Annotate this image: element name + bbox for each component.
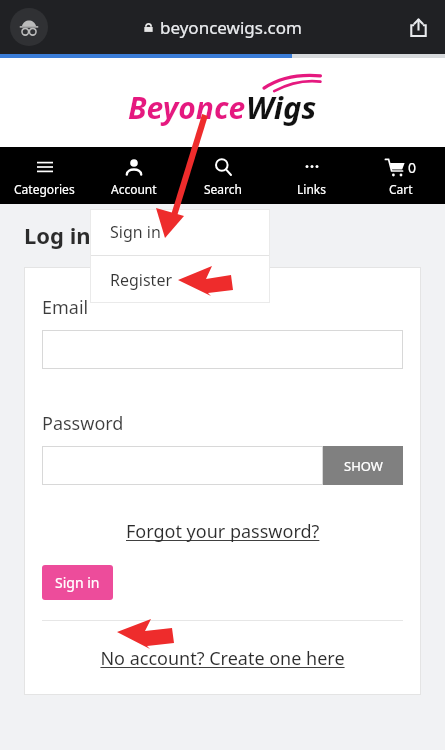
staticText: Register	[110, 269, 173, 291]
staticText: Sign in	[110, 221, 161, 243]
staticText: Password	[42, 411, 124, 436]
button[interactable]: No account? Create one here	[100, 646, 345, 671]
button[interactable]: Search	[178, 150, 267, 202]
staticText: SHOW	[344, 457, 383, 475]
staticText: Account	[111, 181, 157, 197]
button[interactable]: 0	[356, 150, 445, 202]
staticText: Categories	[14, 181, 75, 197]
staticText: Log in	[24, 220, 91, 250]
button[interactable]	[42, 330, 403, 369]
button[interactable]: Forgot your password?	[126, 519, 320, 544]
staticText: Sign in	[55, 573, 100, 592]
staticText: Email	[42, 295, 89, 320]
staticText: Beyonce	[128, 87, 246, 128]
button[interactable]: Categories	[0, 150, 89, 202]
button[interactable]	[42, 446, 323, 485]
staticText: Cart	[389, 181, 413, 197]
button[interactable]: Links	[267, 150, 356, 202]
button[interactable]: Share	[401, 10, 435, 44]
button[interactable]: Account	[89, 150, 178, 202]
staticText: 0	[408, 158, 417, 177]
button[interactable]: Incognito	[10, 8, 48, 46]
staticText: beyoncewigs.com	[160, 16, 302, 39]
button[interactable]: Register	[90, 256, 270, 303]
staticText: Links	[297, 181, 326, 197]
button[interactable]: Sign in	[90, 209, 270, 255]
button[interactable]: SHOW	[323, 446, 403, 485]
staticText: Search	[204, 181, 242, 197]
button[interactable]: Sign in	[42, 565, 113, 600]
staticText: Wigs	[246, 86, 317, 128]
